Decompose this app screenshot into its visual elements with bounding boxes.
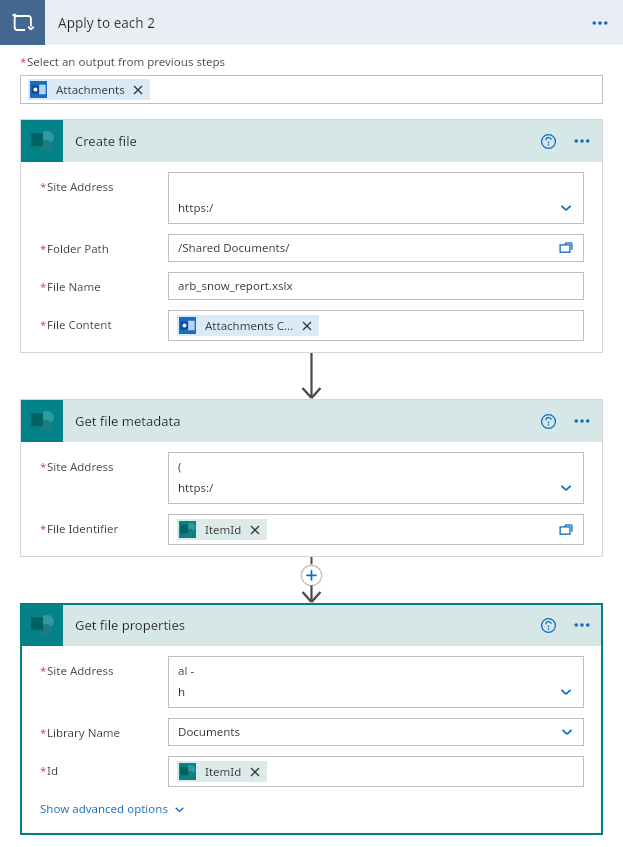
staticText: Site Address [47, 663, 114, 679]
staticText: * [40, 459, 47, 475]
staticText: Attachments C... [205, 318, 294, 334]
staticText: Apply to each 2 [58, 14, 155, 32]
staticText: h [178, 684, 186, 700]
other: Browse folders [557, 239, 575, 257]
button[interactable]: Get file metadata [20, 399, 603, 442]
button[interactable]: Help [535, 128, 561, 154]
button[interactable]: https:/ [168, 172, 584, 224]
staticText: /Shared Documents/ [178, 240, 290, 256]
staticText: Show advanced options [40, 801, 168, 817]
staticText: https:/ [178, 480, 214, 496]
button[interactable]: Help [535, 408, 561, 434]
staticText: * [40, 521, 47, 537]
button[interactable]: Remove token [248, 523, 262, 537]
staticText: al - [178, 663, 195, 679]
staticText: Library Name [47, 725, 121, 741]
staticText: Select an output from previous steps [27, 54, 226, 70]
staticText: File Identifier [47, 521, 119, 537]
staticText: Get file metadata [75, 412, 181, 430]
button[interactable]: /Shared Documents/ [168, 234, 584, 262]
button[interactable]: Get file properties [20, 603, 603, 646]
staticText: Create file [75, 132, 137, 150]
staticText: * [40, 663, 47, 679]
staticText: Id [47, 763, 58, 779]
button[interactable]: Attachments C... [177, 315, 319, 336]
button[interactable]: ItemId [168, 756, 584, 787]
staticText: Documents [178, 724, 240, 740]
button[interactable]: More commands [569, 612, 595, 638]
button[interactable]: Show advanced options [40, 801, 185, 817]
staticText: * [40, 763, 47, 779]
other: Browse folders [557, 521, 575, 539]
button[interactable]: Attachments [28, 79, 150, 100]
button[interactable]: Attachments [20, 75, 603, 104]
staticText: Site Address [47, 179, 114, 195]
staticText: arb_snow_report.xslx [178, 278, 293, 294]
button[interactable]: ItemId [177, 519, 267, 540]
button[interactable]: More commands [583, 6, 617, 40]
button[interactable]: al - [168, 656, 584, 708]
button[interactable]: Remove token [248, 765, 262, 779]
button[interactable]: Insert a new step [301, 566, 323, 588]
staticText: File Content [47, 317, 112, 333]
staticText: ItemId [205, 764, 242, 780]
button[interactable]: Help [535, 612, 561, 638]
staticText: File Name [47, 279, 101, 295]
button[interactable]: Remove token [300, 319, 314, 333]
staticText: * [40, 241, 47, 257]
staticText: ( [178, 459, 182, 475]
staticText: * [40, 317, 47, 333]
button[interactable]: Documents [168, 718, 584, 746]
button[interactable]: Attachments C... [168, 310, 584, 341]
button[interactable]: Apply to each loop [0, 0, 45, 45]
button[interactable]: More commands [569, 408, 595, 434]
staticText: * [20, 54, 27, 70]
staticText: * [40, 725, 47, 741]
staticText: * [40, 279, 47, 295]
button[interactable]: ItemId [168, 514, 584, 545]
staticText: Get file properties [75, 616, 186, 634]
button[interactable]: More commands [569, 128, 595, 154]
button[interactable]: ( [168, 452, 584, 504]
button[interactable]: arb_snow_report.xslx [168, 272, 584, 300]
button[interactable]: Remove token [131, 83, 145, 97]
button[interactable]: Create file [20, 119, 603, 162]
staticText: * [40, 179, 47, 195]
staticText: ItemId [205, 522, 242, 538]
staticText: Attachments [56, 82, 125, 98]
staticText: Folder Path [47, 241, 109, 257]
staticText: Site Address [47, 459, 114, 475]
button[interactable]: ItemId [177, 761, 267, 782]
staticText: https:/ [178, 200, 214, 216]
